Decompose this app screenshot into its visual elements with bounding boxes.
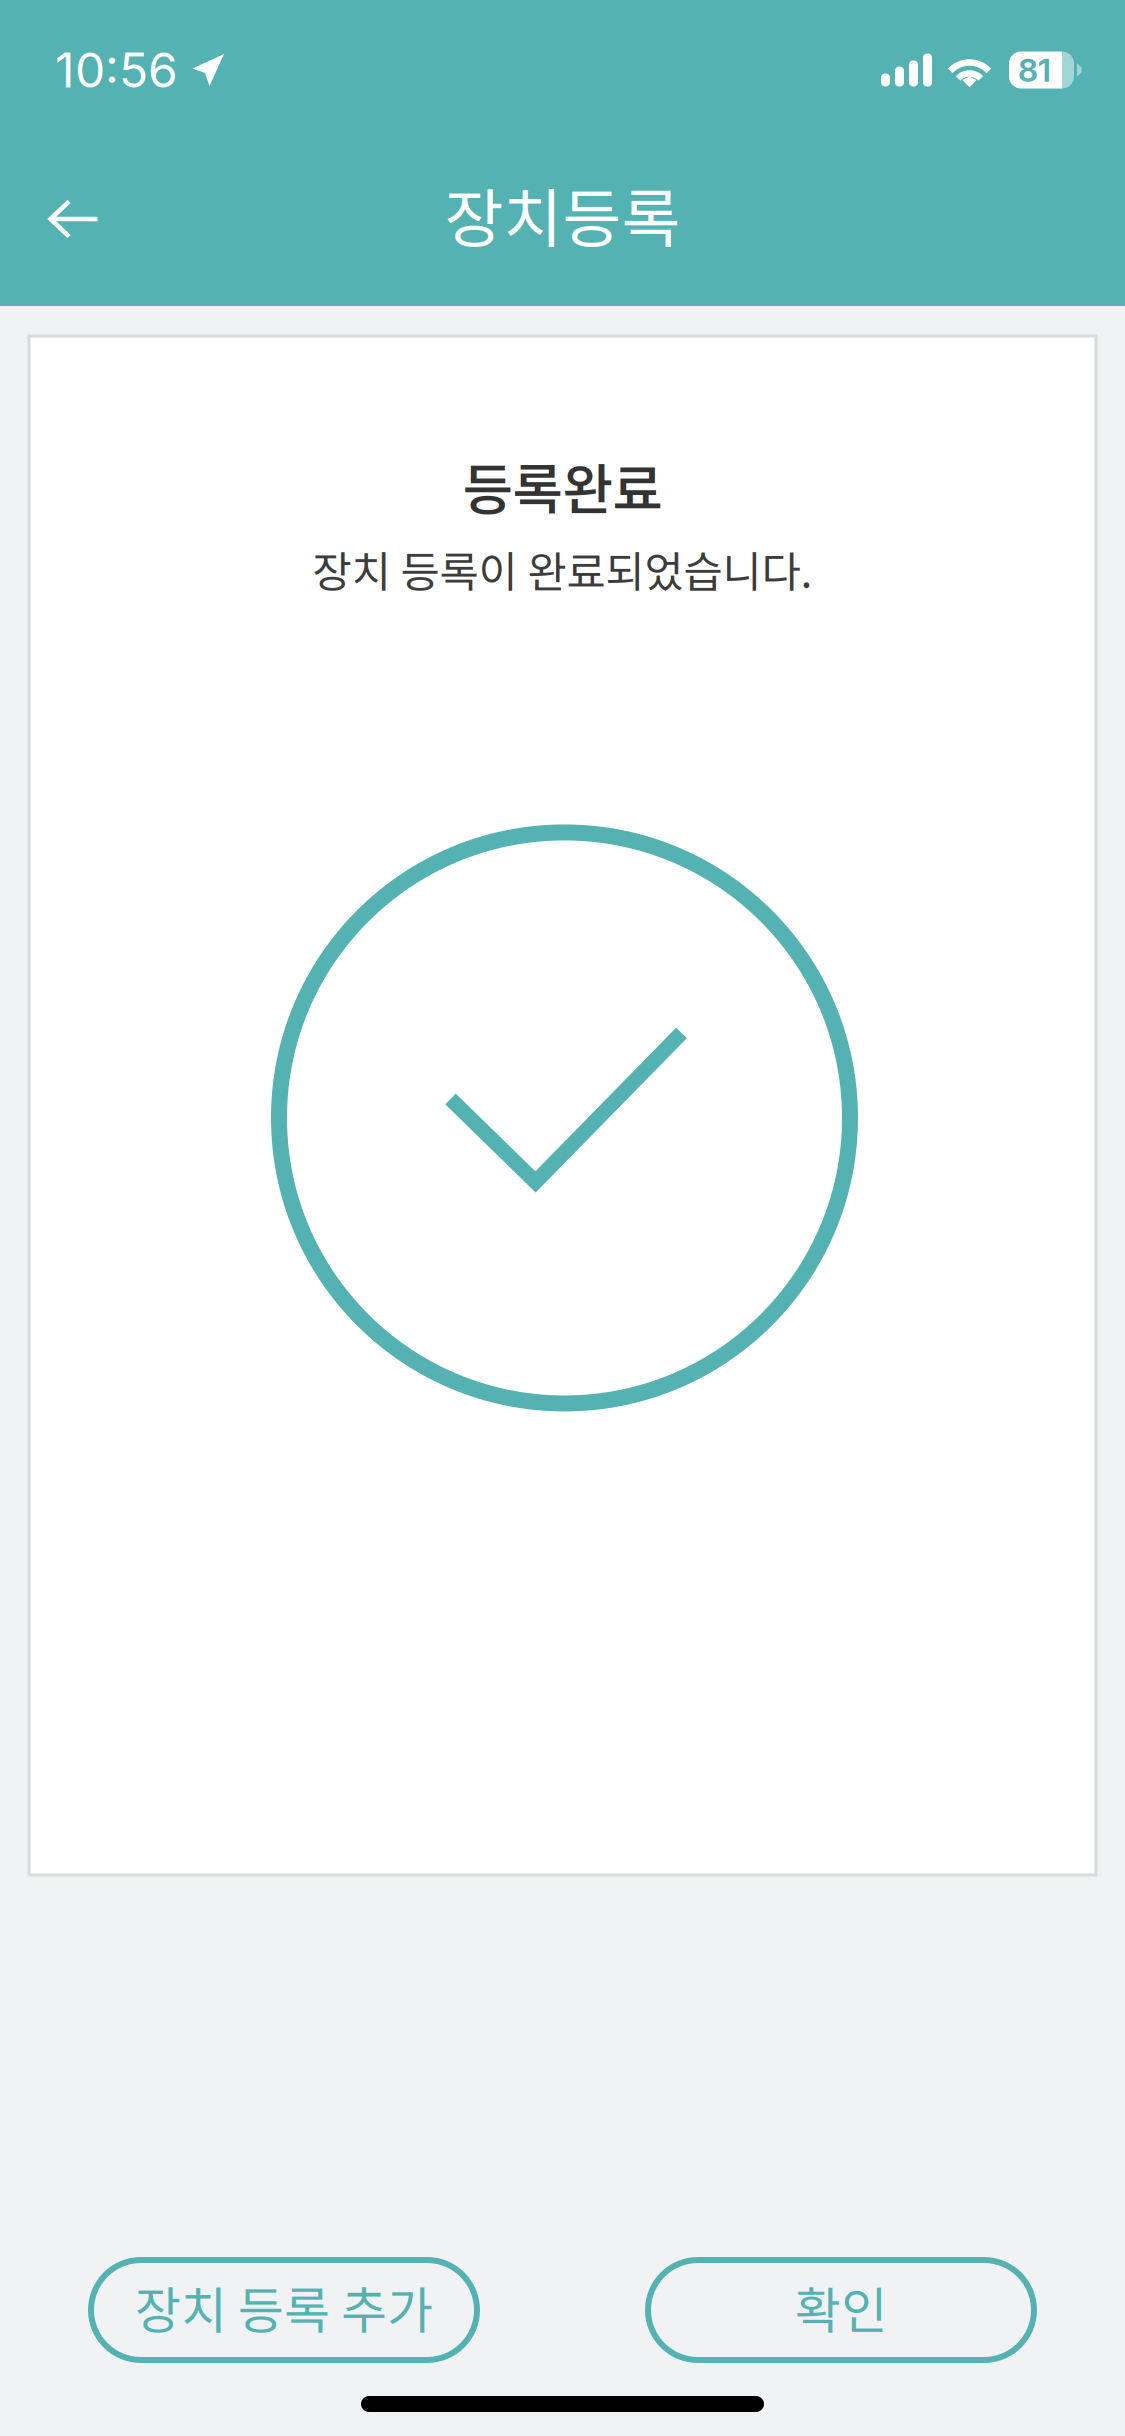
staticText: 등록완료 [462, 446, 662, 525]
staticText: 81 [1018, 51, 1051, 89]
staticText: 장치 등록 추가 [135, 2271, 433, 2343]
button[interactable]: 확인 [648, 2260, 1034, 2360]
button[interactable]: Back [24, 169, 124, 269]
staticText: 10:56 [55, 41, 178, 99]
button[interactable]: 장치 등록 추가 [91, 2260, 477, 2360]
staticText: 장치등록 [444, 168, 680, 260]
staticText: 장치 등록이 완료되었습니다. [312, 538, 812, 600]
staticText: 확인 [795, 2271, 887, 2343]
